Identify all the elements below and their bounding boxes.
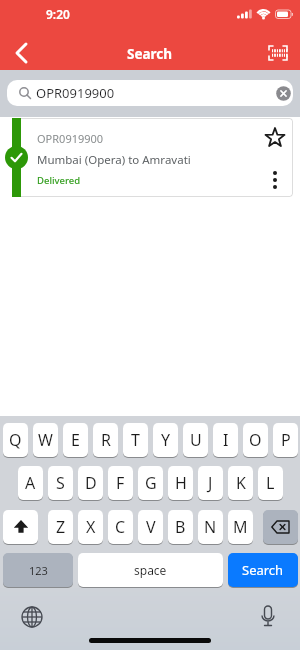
staticText: C — [115, 516, 126, 538]
staticText: X — [86, 516, 96, 538]
button[interactable]: Y — [153, 423, 178, 457]
button[interactable]: A — [18, 466, 43, 500]
staticText: Search — [127, 45, 173, 63]
staticText: 123 — [29, 563, 48, 578]
staticText: P — [281, 429, 291, 451]
button[interactable]: R — [93, 423, 118, 457]
staticText: Q — [9, 429, 22, 451]
button[interactable]: G — [138, 466, 163, 500]
staticText: R — [101, 429, 111, 451]
button[interactable]: OPR0919900 — [12, 118, 293, 197]
button[interactable]: S — [48, 466, 73, 500]
staticText: O — [249, 429, 262, 451]
button[interactable]: M — [228, 510, 253, 544]
staticText: Y — [161, 429, 171, 451]
button[interactable]: D — [78, 466, 103, 500]
button[interactable]: Search — [228, 553, 298, 587]
staticText: K — [236, 472, 246, 494]
staticText: space — [134, 562, 167, 578]
staticText: Search — [242, 561, 284, 579]
button[interactable] — [3, 510, 38, 544]
staticText: W — [38, 429, 53, 451]
button[interactable]: P — [273, 423, 298, 457]
button[interactable] — [263, 126, 287, 150]
button[interactable]: W — [33, 423, 58, 457]
button[interactable] — [273, 83, 293, 103]
staticText: D — [85, 472, 97, 494]
staticText: V — [146, 516, 156, 538]
button[interactable] — [6, 38, 38, 68]
button[interactable]: N — [198, 510, 223, 544]
button[interactable] — [18, 603, 46, 631]
button[interactable]: OPR0919900 — [7, 80, 293, 106]
button[interactable] — [263, 510, 298, 544]
button[interactable]: V — [138, 510, 163, 544]
button[interactable]: K — [228, 466, 253, 500]
staticText: N — [204, 516, 217, 538]
button[interactable]: O — [243, 423, 268, 457]
button[interactable]: F — [108, 466, 133, 500]
button[interactable] — [262, 38, 294, 68]
button[interactable]: C — [108, 510, 133, 544]
staticText: B — [175, 516, 186, 538]
button[interactable]: I — [213, 423, 238, 457]
staticText: T — [131, 429, 140, 451]
staticText: I — [223, 429, 229, 451]
button[interactable] — [254, 603, 282, 631]
staticText: S — [56, 472, 65, 494]
button[interactable]: L — [258, 466, 283, 500]
staticText: J — [208, 472, 213, 494]
button[interactable]: space — [78, 553, 223, 587]
staticText: L — [266, 472, 275, 494]
button[interactable]: Z — [48, 510, 73, 544]
button[interactable]: B — [168, 510, 193, 544]
staticText: M — [233, 516, 248, 538]
button[interactable] — [263, 168, 287, 192]
staticText: U — [190, 429, 202, 451]
staticText: F — [116, 472, 125, 494]
staticText: G — [145, 472, 157, 494]
staticText: 9:20 — [46, 6, 70, 22]
button[interactable]: X — [78, 510, 103, 544]
button[interactable]: U — [183, 423, 208, 457]
staticText: Z — [56, 516, 66, 538]
staticText: A — [25, 472, 36, 494]
staticText: Mumbai (Opera) to Amravati — [37, 152, 191, 168]
staticText: H — [175, 472, 187, 494]
button[interactable]: J — [198, 466, 223, 500]
button[interactable]: H — [168, 466, 193, 500]
staticText: E — [71, 429, 80, 451]
button[interactable]: E — [63, 423, 88, 457]
staticText: OPR0919900 — [37, 131, 104, 146]
button[interactable]: Q — [3, 423, 28, 457]
button[interactable]: T — [123, 423, 148, 457]
staticText: OPR0919900 — [36, 84, 115, 102]
staticText: Delivered — [37, 174, 81, 187]
button[interactable]: 123 — [3, 553, 73, 587]
